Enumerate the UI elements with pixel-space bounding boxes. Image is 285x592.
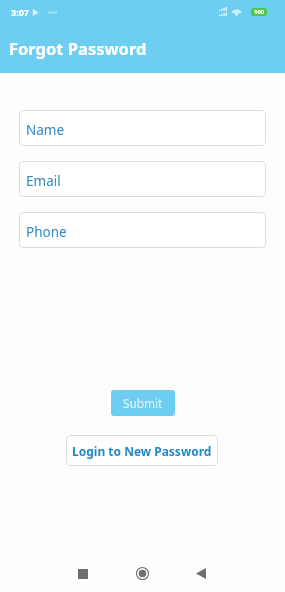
button[interactable]: Login to New Password [66, 435, 218, 466]
button[interactable]: Email [19, 161, 266, 197]
button[interactable]: Name [19, 110, 266, 146]
staticText: Login to New Password [72, 443, 212, 459]
staticText: 3:07 [11, 6, 29, 18]
button[interactable]: Submit [111, 390, 175, 416]
button[interactable]: Phone [19, 212, 266, 248]
button[interactable]: Back [184, 557, 217, 590]
staticText: Phone [26, 223, 67, 241]
staticText: Name [26, 121, 65, 139]
staticText: Email [26, 172, 61, 190]
staticText: Submit [123, 395, 163, 411]
button[interactable]: Recents [66, 557, 99, 590]
staticText: Forgot Password [9, 37, 147, 59]
button[interactable]: Home [126, 557, 159, 590]
staticText: 100 [254, 8, 265, 16]
